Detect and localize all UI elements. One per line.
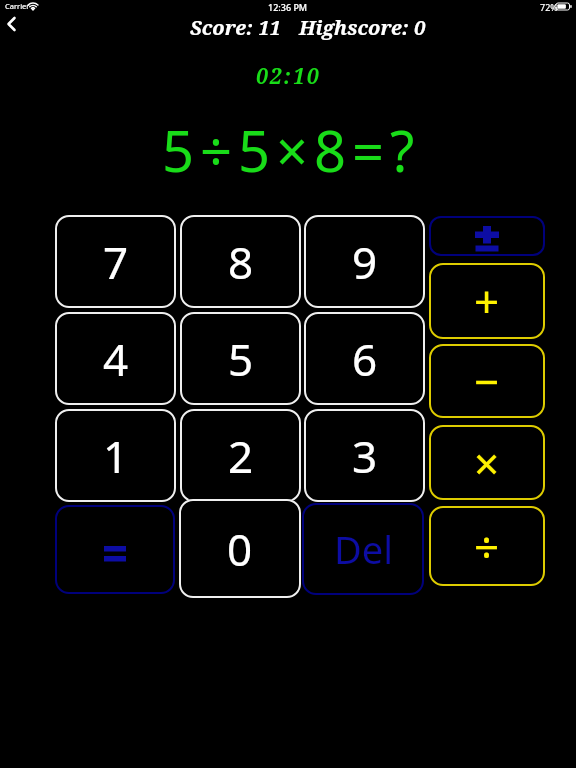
button[interactable]: 4: [55, 312, 176, 405]
staticText: +: [474, 271, 500, 331]
staticText: 5: [228, 329, 254, 389]
button[interactable]: 2: [180, 409, 301, 502]
staticText: 5: [238, 112, 271, 188]
staticText: 5: [162, 112, 195, 188]
staticText: =: [352, 112, 385, 188]
staticText: −: [474, 351, 500, 411]
button[interactable]: 1: [55, 409, 176, 502]
staticText: 9: [352, 232, 378, 292]
button[interactable]: 8: [180, 215, 301, 308]
staticText: 8: [228, 232, 254, 292]
staticText: 1: [103, 426, 129, 486]
staticText: 12:36 PM: [268, 1, 308, 13]
button[interactable]: [429, 216, 545, 256]
button[interactable]: −: [429, 344, 545, 418]
staticText: Carrier: [5, 1, 30, 11]
staticText: 02:10: [256, 62, 321, 91]
staticText: Highscore: 0: [299, 14, 426, 41]
button[interactable]: +: [429, 263, 545, 339]
staticText: ÷: [200, 112, 233, 188]
button[interactable]: [2, 12, 26, 36]
staticText: ×: [474, 433, 500, 493]
staticText: 8: [314, 112, 347, 188]
staticText: 6: [352, 329, 378, 389]
staticText: Score: 11: [190, 14, 281, 41]
staticText: 0: [227, 519, 253, 579]
button[interactable]: Del: [302, 503, 424, 595]
button[interactable]: 7: [55, 215, 176, 308]
staticText: 7: [103, 232, 129, 292]
staticText: 72%: [540, 1, 558, 13]
staticText: 4: [103, 329, 129, 389]
staticText: Del: [334, 523, 393, 575]
button[interactable]: 6: [304, 312, 425, 405]
button[interactable]: ÷: [429, 506, 545, 586]
staticText: ×: [276, 112, 309, 188]
button[interactable]: ×: [429, 425, 545, 500]
button[interactable]: 0: [179, 499, 301, 598]
button[interactable]: [55, 505, 175, 594]
button[interactable]: 9: [304, 215, 425, 308]
staticText: 2: [228, 426, 254, 486]
staticText: 3: [352, 426, 378, 486]
staticText: ÷: [474, 516, 500, 576]
button[interactable]: 3: [304, 409, 425, 502]
staticText: ?: [390, 112, 415, 188]
button[interactable]: 5: [180, 312, 301, 405]
